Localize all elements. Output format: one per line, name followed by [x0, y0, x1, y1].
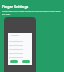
staticText: Customize your finger gestures and short… [2, 10, 62, 16]
staticText: Finger Settings [2, 4, 29, 9]
